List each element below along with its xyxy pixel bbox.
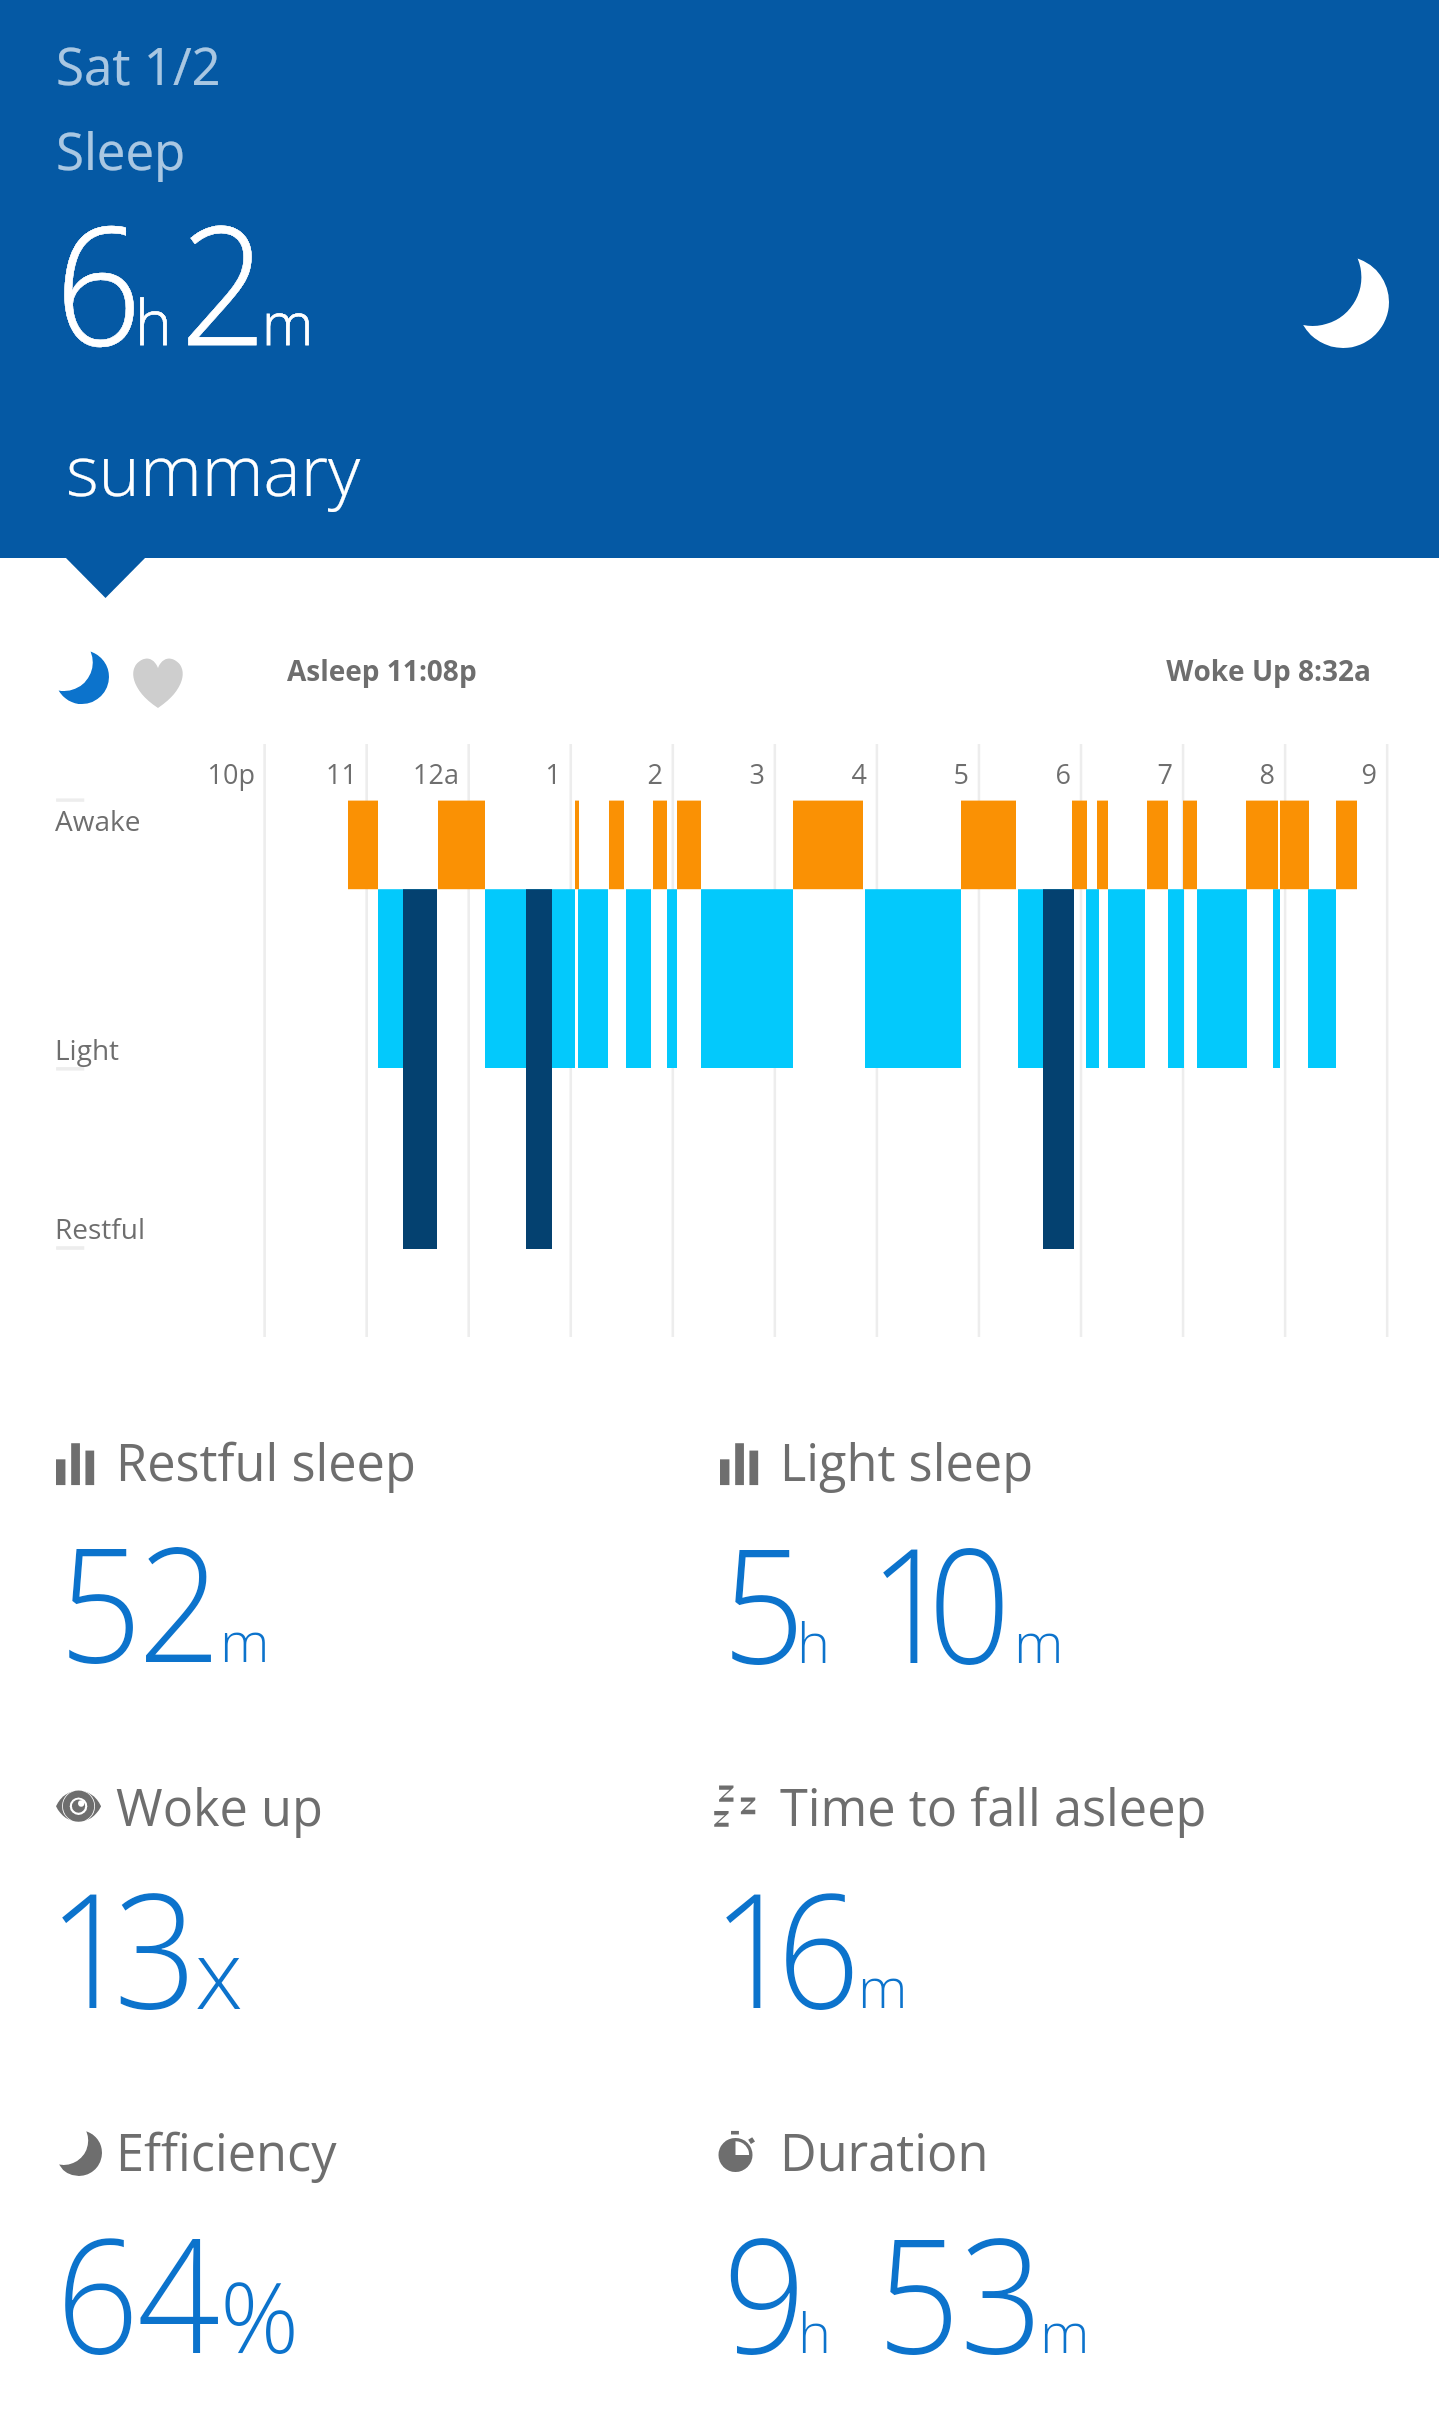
staticText: Woke up (116, 1772, 323, 1841)
button[interactable] (716, 2113, 1336, 2363)
staticText: h (135, 279, 172, 363)
staticText: Duration (780, 2117, 989, 2186)
staticText: 1 (712, 1839, 796, 2054)
staticText: 6 (777, 1839, 861, 2054)
button[interactable] (716, 1423, 1336, 1673)
staticText: Light sleep (780, 1427, 1034, 1496)
staticText: Asleep 11:08p (287, 651, 477, 689)
staticText: 1 (48, 1839, 132, 2054)
staticText: Woke Up 8:32a (671, 651, 1371, 689)
staticText: m (220, 1602, 270, 1678)
staticText: Sat 1/2 (56, 30, 221, 99)
staticText: 5 (877, 2184, 961, 2399)
staticText: x (195, 1906, 243, 2037)
staticText: 9 (723, 2184, 807, 2399)
staticText: 8 (575, 755, 1275, 792)
button[interactable] (52, 1423, 672, 1673)
staticText: 2 (180, 169, 267, 394)
staticText: 6 (55, 169, 142, 394)
staticText: 3 (65, 755, 765, 792)
staticText: 5 (269, 755, 969, 792)
staticText: m (858, 1948, 908, 2024)
staticText: 4 (137, 2184, 221, 2399)
staticText: 7 (473, 755, 1173, 792)
staticText: Restful (55, 1209, 145, 1247)
button[interactable] (0, 0, 1439, 558)
staticText: 11 (0, 755, 357, 792)
button[interactable] (716, 1768, 1336, 2018)
staticText: 5 (722, 1494, 806, 1709)
button[interactable]: Heart rate (120, 640, 196, 716)
staticText: Sleep (56, 115, 186, 184)
staticText: 3 (960, 2184, 1044, 2399)
staticText: 12a (0, 755, 459, 792)
staticText: Restful sleep (116, 1427, 416, 1496)
staticText: Light (55, 1030, 120, 1068)
staticText: h (797, 1603, 831, 1679)
button[interactable] (52, 1768, 672, 2018)
staticText: % (220, 2248, 300, 2381)
staticText: 5 (59, 1493, 143, 1708)
staticText: 6 (371, 755, 1071, 792)
staticText: 2 (0, 755, 663, 792)
button[interactable]: Sleep stages (44, 640, 120, 716)
staticText: m (262, 283, 314, 362)
staticText: Efficiency (116, 2117, 337, 2186)
staticText: 0 (928, 1494, 1012, 1709)
staticText: m (262, 283, 314, 362)
staticText: 2 (180, 169, 267, 394)
staticText: 3 (114, 1839, 198, 2054)
staticText: Awake (55, 801, 141, 839)
other: Sleep (1297, 256, 1389, 348)
staticText: m (1014, 1603, 1064, 1679)
staticText: 6 (55, 169, 142, 394)
staticText: Time to fall asleep (780, 1772, 1207, 1841)
staticText: 9 (677, 755, 1377, 792)
staticText: m (1040, 2293, 1090, 2369)
staticText: summary (66, 421, 361, 516)
staticText: 2 (138, 1493, 222, 1708)
staticText: h (135, 279, 172, 363)
staticText: 4 (167, 755, 867, 792)
staticText: h (798, 2293, 832, 2369)
staticText: 10p (0, 755, 255, 792)
button[interactable] (52, 2113, 672, 2363)
staticText: 1 (0, 755, 561, 792)
staticText: 6 (56, 2184, 140, 2399)
staticText: 1 (869, 1494, 953, 1709)
